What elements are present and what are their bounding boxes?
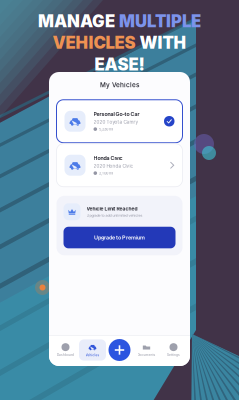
staticText: Upgrade to Premium <box>94 234 145 241</box>
staticText: MANAGE <box>38 11 115 31</box>
staticText: Upgrade to add unlimited vehicles <box>86 213 142 218</box>
staticText: 2020 Toyota Camry <box>93 119 138 125</box>
button[interactable]: Upgrade to Premium <box>63 227 175 248</box>
button[interactable]: Honda Civic <box>56 144 182 187</box>
staticText: VEHICLES <box>52 33 135 53</box>
staticText: WITH <box>139 33 186 53</box>
button[interactable]: Personal Go-to Car <box>56 100 182 143</box>
staticText: Settings <box>167 353 180 357</box>
staticText: Documents <box>137 353 155 357</box>
staticText: Personal Go-to Car <box>93 111 139 117</box>
button[interactable]: Add vehicle <box>106 338 133 362</box>
button[interactable]: Settings <box>160 340 187 360</box>
staticText: 2,100 mi <box>99 171 113 175</box>
staticText: MULTIPLE <box>119 11 201 31</box>
staticText: EASE! <box>94 54 144 74</box>
button[interactable]: Vehicles <box>79 339 106 361</box>
button[interactable]: Documents <box>133 340 160 360</box>
button[interactable]: Dashboard <box>52 340 79 360</box>
staticText: Honda Civic <box>93 155 122 161</box>
staticText: Vehicles <box>85 353 99 357</box>
staticText: 2020 Honda Civic <box>93 163 133 169</box>
staticText: My Vehicles <box>100 81 139 89</box>
staticText: 5,230 mi <box>99 127 113 131</box>
staticText: Vehicle Limit Reached <box>86 206 137 212</box>
staticText: Dashboard <box>57 353 74 357</box>
